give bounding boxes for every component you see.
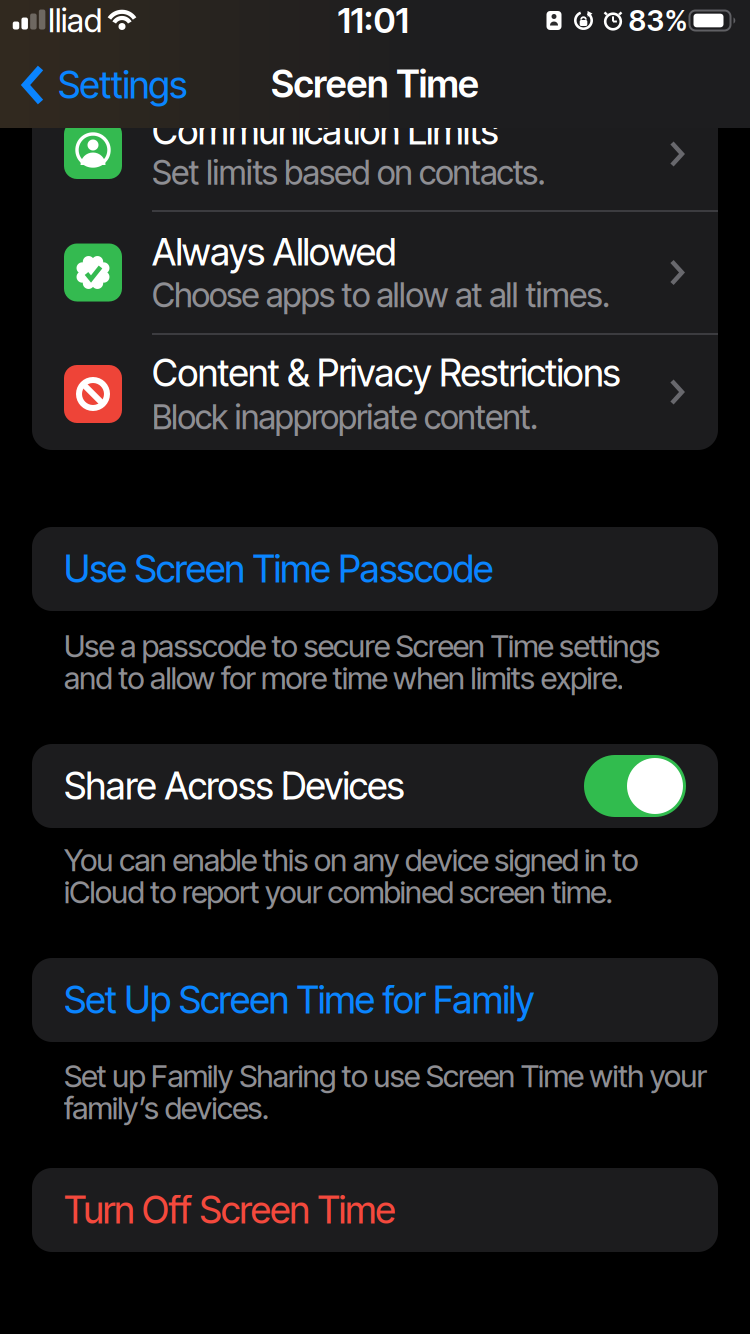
staticText: Set limits based on contacts. bbox=[152, 152, 545, 193]
button[interactable]: Use Screen Time Passcode bbox=[32, 527, 718, 611]
button[interactable]: Communication Limits bbox=[32, 93, 718, 211]
staticText: Iliad bbox=[48, 1, 102, 40]
staticText: and to allow for more time when limits e… bbox=[64, 659, 624, 696]
staticText: Communication Limits bbox=[152, 108, 499, 154]
staticText: You can enable this on any device signed… bbox=[64, 841, 638, 878]
staticText: Use Screen Time Passcode bbox=[64, 546, 493, 592]
staticText: 11:01 bbox=[337, 0, 408, 41]
button[interactable]: Share Across Devices bbox=[584, 755, 686, 817]
button[interactable]: Back to Settings bbox=[20, 58, 280, 112]
staticText: Screen Time bbox=[271, 61, 479, 107]
staticText: Settings bbox=[58, 62, 187, 108]
staticText: Always Allowed bbox=[152, 229, 396, 275]
button[interactable]: Content & Privacy Restrictions bbox=[32, 334, 718, 450]
staticText: Choose apps to allow at all times. bbox=[152, 275, 610, 315]
staticText: Content & Privacy Restrictions bbox=[152, 350, 621, 396]
staticText: family’s devices. bbox=[64, 1089, 270, 1126]
button[interactable]: Set Up Screen Time for Family bbox=[32, 958, 718, 1042]
staticText: Turn Off Screen Time bbox=[64, 1187, 396, 1233]
staticText: Set up Family Sharing to use Screen Time… bbox=[64, 1057, 707, 1094]
staticText: Use a passcode to secure Screen Time set… bbox=[64, 627, 660, 664]
staticText: Block inappropriate content. bbox=[152, 397, 538, 437]
staticText: Set Up Screen Time for Family bbox=[64, 977, 534, 1023]
staticText: iCloud to report your combined screen ti… bbox=[64, 873, 614, 910]
staticText: 83% bbox=[628, 3, 687, 38]
button[interactable]: Always Allowed bbox=[32, 211, 718, 334]
button[interactable]: Turn Off Screen Time bbox=[32, 1168, 718, 1252]
staticText: Share Across Devices bbox=[64, 763, 405, 809]
